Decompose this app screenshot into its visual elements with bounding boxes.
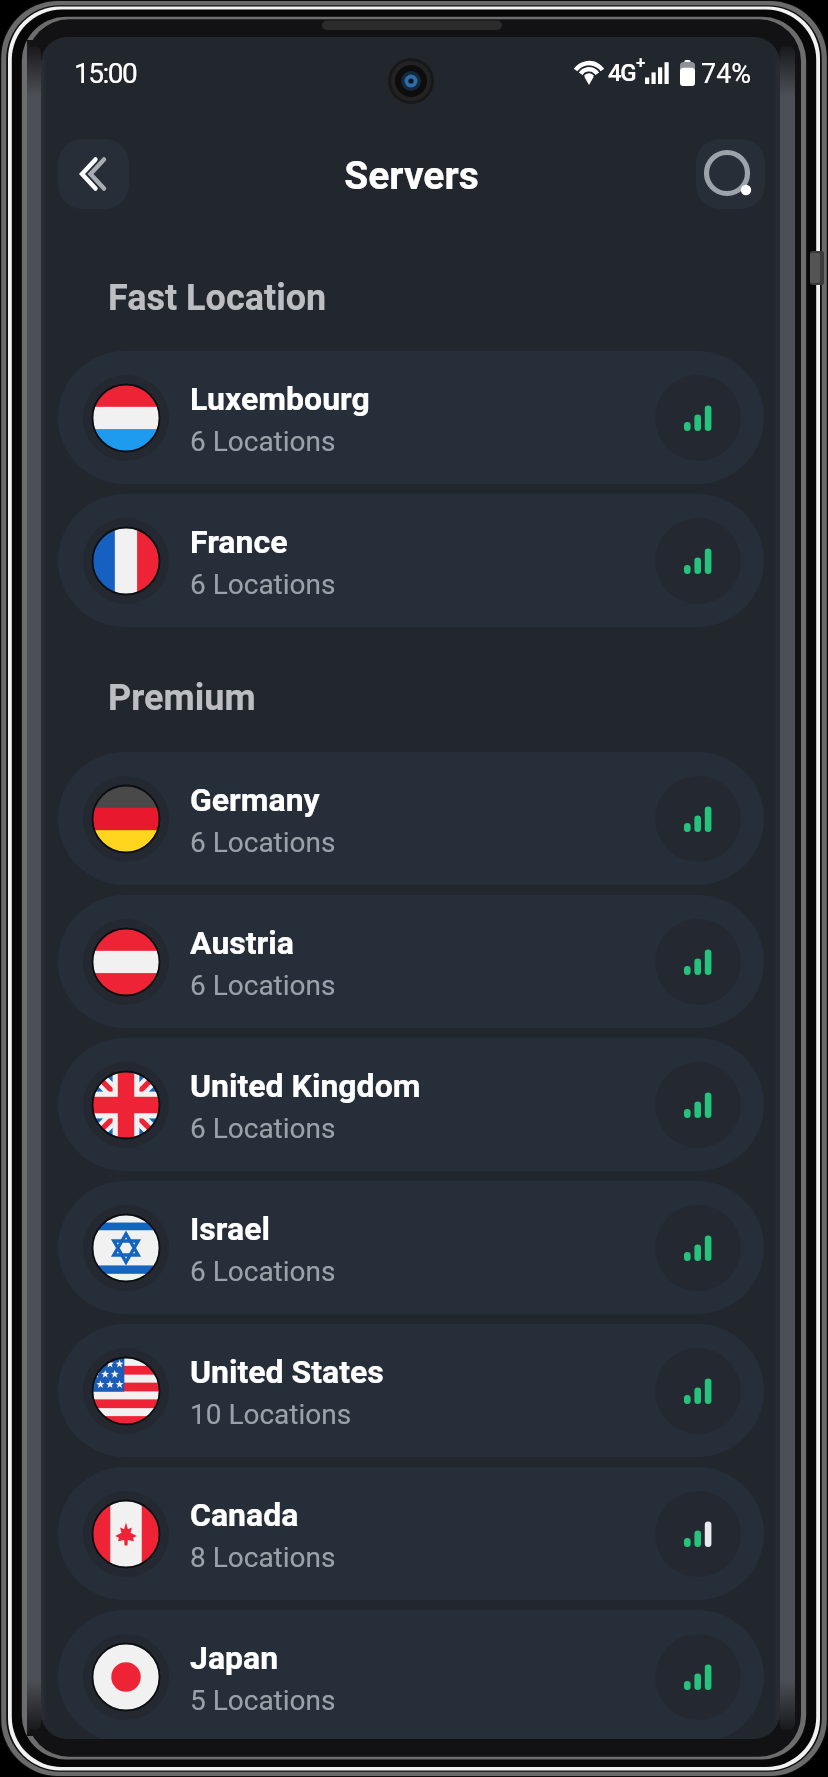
button[interactable]: Luxembourg	[58, 351, 764, 484]
button[interactable]: Israel	[58, 1181, 764, 1314]
staticText: France	[190, 523, 288, 561]
staticText: Austria	[190, 924, 294, 962]
button[interactable]: Austria	[58, 895, 764, 1028]
staticText: Canada	[190, 1496, 299, 1534]
staticText: 6 Locations	[190, 1255, 336, 1288]
staticText: United Kingdom	[190, 1067, 421, 1105]
button[interactable]: Canada	[58, 1467, 764, 1600]
button[interactable]: France	[58, 494, 764, 627]
staticText: Premium	[108, 677, 256, 719]
staticText: Israel	[190, 1210, 270, 1248]
staticText: 5 Locations	[190, 1684, 336, 1717]
staticText: 6 Locations	[190, 969, 336, 1002]
staticText: 6 Locations	[190, 568, 336, 601]
staticText: Servers	[344, 153, 479, 199]
staticText: Luxembourg	[190, 380, 370, 418]
button[interactable]: Back	[58, 139, 129, 209]
button[interactable]: Search	[696, 139, 765, 209]
staticText: 15:00	[74, 57, 137, 90]
button[interactable]: Japan	[58, 1610, 764, 1739]
button[interactable]: Germany	[58, 752, 764, 885]
staticText: Japan	[190, 1639, 279, 1677]
staticText: 10 Locations	[190, 1398, 352, 1431]
staticText: 8 Locations	[190, 1541, 336, 1574]
staticText: United States	[190, 1353, 384, 1391]
staticText: 4G	[608, 59, 636, 87]
staticText: 6 Locations	[190, 425, 336, 458]
button[interactable]: United Kingdom	[58, 1038, 764, 1171]
staticText: 74%	[701, 58, 752, 90]
staticText: Fast Location	[108, 277, 327, 319]
staticText: +	[636, 52, 646, 72]
staticText: 6 Locations	[190, 1112, 336, 1145]
staticText: 6 Locations	[190, 826, 336, 859]
button[interactable]: United States	[58, 1324, 764, 1457]
staticText: Germany	[190, 781, 320, 819]
